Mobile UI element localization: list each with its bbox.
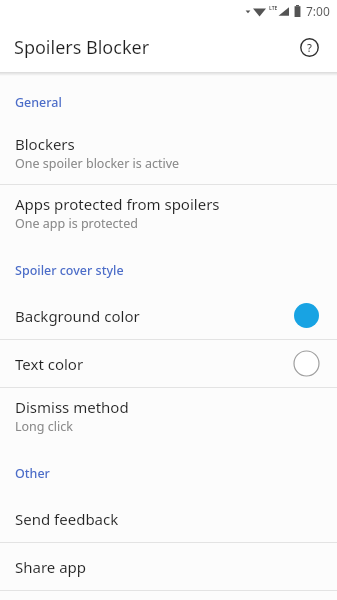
staticText: Text color bbox=[15, 354, 293, 374]
staticText: Long click bbox=[15, 418, 73, 435]
button[interactable]: Help bbox=[291, 29, 327, 65]
button[interactable]: Text color bbox=[0, 340, 337, 387]
staticText: 7:00 bbox=[306, 3, 330, 19]
staticText: General bbox=[15, 94, 62, 111]
staticText: ? bbox=[307, 40, 312, 55]
button[interactable]: Apps protected from spoilers bbox=[0, 185, 337, 244]
staticText: Spoiler cover style bbox=[15, 262, 124, 279]
staticText: Dismiss method bbox=[15, 397, 129, 417]
staticText: LTE bbox=[269, 5, 278, 12]
staticText: Apps protected from spoilers bbox=[15, 194, 220, 214]
button[interactable]: Dismiss method bbox=[0, 388, 337, 447]
staticText: Background color bbox=[15, 306, 293, 326]
button[interactable]: Background color bbox=[0, 292, 337, 339]
staticText: Other bbox=[15, 465, 50, 482]
staticText: Blockers bbox=[15, 134, 75, 154]
staticText: Spoilers Blocker bbox=[14, 35, 150, 60]
staticText: Share app bbox=[15, 557, 87, 577]
button[interactable]: Blockers bbox=[0, 125, 337, 184]
button[interactable]: Send feedback bbox=[0, 495, 337, 542]
staticText: One spoiler blocker is active bbox=[15, 155, 180, 172]
button[interactable]: Share app bbox=[0, 543, 337, 590]
staticText: Send feedback bbox=[15, 509, 119, 529]
staticText: One app is protected bbox=[15, 215, 138, 232]
